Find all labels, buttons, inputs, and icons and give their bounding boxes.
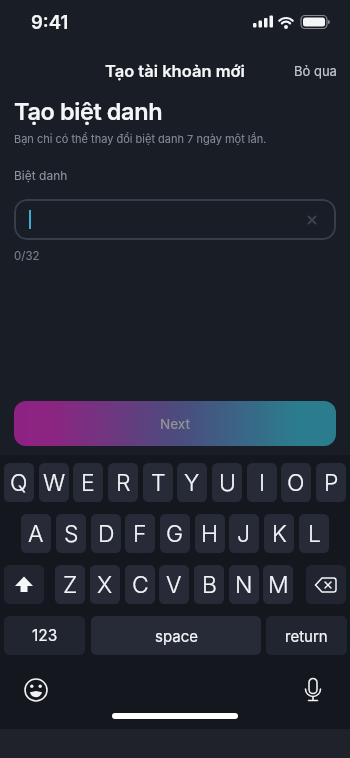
staticText: A xyxy=(28,520,44,548)
button[interactable]: A xyxy=(21,514,51,553)
button[interactable]: H xyxy=(195,514,225,553)
button[interactable]: Y xyxy=(177,463,207,502)
staticText: Y xyxy=(184,469,200,497)
staticText: E xyxy=(81,469,95,497)
button[interactable]: C xyxy=(125,565,155,604)
button[interactable]: X xyxy=(90,565,120,604)
staticText: K xyxy=(272,520,287,548)
staticText: Tạo biệt danh xyxy=(14,97,163,125)
button[interactable]: N xyxy=(229,565,259,604)
button[interactable] xyxy=(24,678,48,702)
button[interactable]: P xyxy=(316,463,346,502)
staticText: 123 xyxy=(32,626,58,645)
staticText: M xyxy=(268,571,289,599)
button[interactable]: M xyxy=(263,565,293,604)
button[interactable] xyxy=(306,565,346,604)
button[interactable]: F xyxy=(125,514,155,553)
staticText: O xyxy=(287,469,305,497)
staticText: return xyxy=(285,627,328,645)
staticText: Q xyxy=(10,469,28,497)
button[interactable]: L xyxy=(299,514,329,553)
staticText: X xyxy=(97,571,113,599)
button[interactable]: K xyxy=(264,514,294,553)
button[interactable]: O xyxy=(281,463,311,502)
button[interactable]: S xyxy=(56,514,86,553)
staticText: J xyxy=(237,520,251,548)
staticText: T xyxy=(151,469,166,497)
staticText: S xyxy=(64,520,79,548)
staticText: Tạo tài khoản mới xyxy=(105,61,245,81)
button[interactable]: W xyxy=(39,463,69,502)
button[interactable]: D xyxy=(91,514,121,553)
button[interactable]: Z xyxy=(55,565,85,604)
staticText: space xyxy=(155,627,198,645)
staticText: C xyxy=(132,571,149,599)
staticText: Next xyxy=(160,416,191,432)
button[interactable]: E xyxy=(73,463,103,502)
staticText: N xyxy=(235,571,253,599)
staticText: G xyxy=(166,520,184,548)
staticText: W xyxy=(43,469,66,497)
button[interactable] xyxy=(4,565,44,604)
button[interactable]: U xyxy=(212,463,242,502)
staticText: F xyxy=(133,520,147,548)
button[interactable]: space xyxy=(91,616,261,655)
button[interactable]: R xyxy=(108,463,138,502)
button[interactable]: return xyxy=(266,616,347,655)
button[interactable]: T xyxy=(143,463,173,502)
staticText: Z xyxy=(63,571,78,599)
staticText: L xyxy=(308,520,321,548)
button[interactable]: B xyxy=(194,565,224,604)
staticText: R xyxy=(116,469,131,497)
button[interactable]: J xyxy=(229,514,259,553)
staticText: Bạn chỉ có thể thay đổi biệt danh 7 ngày… xyxy=(14,132,267,145)
staticText: V xyxy=(166,571,182,599)
staticText: 9:41 xyxy=(31,11,69,33)
staticText: B xyxy=(202,571,217,599)
button[interactable]: I xyxy=(247,463,277,502)
staticText: U xyxy=(219,469,236,497)
button[interactable]: Bỏ qua xyxy=(294,63,337,79)
staticText: I xyxy=(259,469,266,497)
button[interactable]: V xyxy=(159,565,189,604)
button[interactable]: G xyxy=(160,514,190,553)
staticText: 0/32 xyxy=(14,249,40,263)
staticText: H xyxy=(201,520,219,548)
button[interactable]: Next xyxy=(14,401,336,446)
button[interactable] xyxy=(301,677,325,703)
button[interactable]: 123 xyxy=(4,616,85,655)
staticText: D xyxy=(98,520,115,548)
button[interactable] xyxy=(14,199,336,240)
button[interactable]: Q xyxy=(4,463,34,502)
staticText: Biệt danh xyxy=(14,168,68,183)
staticText: P xyxy=(324,469,339,497)
